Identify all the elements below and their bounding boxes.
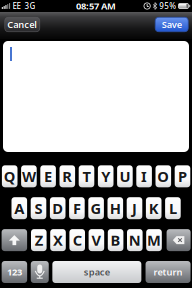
button[interactable]: J — [127, 197, 142, 219]
staticText: 3G — [25, 1, 36, 11]
button[interactable]: space — [52, 261, 141, 283]
staticText: J — [132, 198, 137, 218]
button[interactable]: D — [50, 197, 65, 219]
button[interactable]: G — [88, 197, 104, 219]
staticText: N — [129, 230, 141, 250]
button[interactable]: T — [79, 165, 94, 187]
staticText: D — [52, 198, 63, 218]
staticText: 08:57 AM — [76, 0, 116, 12]
staticText: space — [84, 266, 110, 278]
staticText: W — [22, 167, 36, 186]
button[interactable]: V — [89, 229, 104, 251]
staticText: M — [147, 230, 161, 250]
staticText: C — [73, 230, 82, 250]
staticText: 95% — [159, 1, 176, 11]
button[interactable]: Cancel — [5, 17, 40, 32]
button[interactable]: Y — [98, 165, 113, 187]
staticText: Save — [162, 18, 182, 31]
button[interactable]: F — [69, 197, 85, 219]
staticText: G — [91, 198, 102, 218]
staticText: Cancel — [7, 18, 37, 31]
button[interactable]: N — [127, 229, 143, 251]
button[interactable]: X — [50, 229, 66, 251]
staticText: return — [153, 266, 182, 278]
button[interactable]: P — [175, 165, 190, 187]
button[interactable]: H — [107, 197, 123, 219]
staticText: S — [34, 198, 42, 218]
staticText: Y — [101, 167, 110, 186]
button[interactable]: Shift — [2, 229, 27, 251]
staticText: R — [62, 167, 72, 186]
button[interactable]: S — [31, 197, 46, 219]
button[interactable]: K — [146, 197, 161, 219]
button[interactable]: Z — [31, 229, 47, 251]
button[interactable]: Q — [2, 165, 17, 187]
staticText: B — [111, 230, 121, 250]
staticText: O — [157, 167, 169, 186]
button[interactable]: O — [155, 165, 171, 187]
button[interactable]: E — [40, 165, 56, 187]
button[interactable]: Save — [155, 17, 188, 32]
staticText: Q — [4, 167, 16, 186]
staticText: K — [149, 198, 159, 218]
button[interactable]: Delete — [167, 229, 191, 251]
staticText: I — [141, 167, 147, 186]
staticText: X — [53, 230, 63, 250]
staticText: 123 — [7, 266, 22, 278]
button[interactable]: W — [21, 165, 37, 187]
staticText: E — [44, 167, 52, 186]
button[interactable]: U — [117, 165, 133, 187]
button[interactable]: B — [108, 229, 123, 251]
button[interactable]: R — [59, 165, 75, 187]
button[interactable]: L — [165, 197, 181, 219]
button[interactable]: I — [136, 165, 152, 187]
staticText: H — [110, 198, 121, 218]
staticText: F — [73, 198, 81, 218]
button[interactable]: A — [11, 197, 27, 219]
button[interactable]: return — [145, 261, 190, 283]
staticText: A — [14, 198, 24, 218]
staticText: U — [119, 167, 130, 186]
staticText: L — [169, 198, 177, 218]
staticText: Z — [35, 230, 43, 250]
button[interactable]: Dictate — [31, 261, 49, 283]
staticText: T — [82, 167, 90, 186]
button[interactable]: Numbers — [2, 261, 27, 283]
button[interactable]: M — [146, 229, 162, 251]
staticText: P — [178, 167, 187, 186]
staticText: V — [91, 230, 101, 250]
button[interactable]: C — [69, 229, 85, 251]
staticText: EE — [13, 1, 21, 11]
